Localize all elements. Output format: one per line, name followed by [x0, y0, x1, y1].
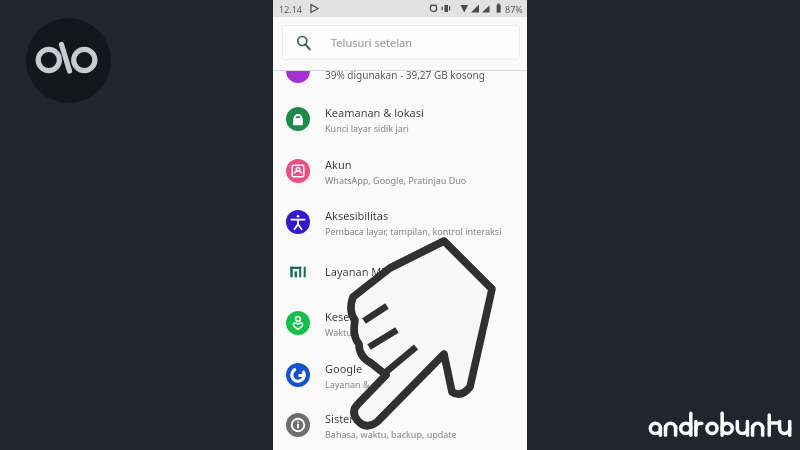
staticText: Bahasa, waktu, backup, update	[325, 428, 457, 440]
staticText: 87%	[505, 3, 523, 15]
button[interactable]: Kesehatan	[273, 297, 527, 349]
button[interactable]: Androbuntu logo	[26, 18, 111, 103]
button[interactable]: Layanan MIUI	[273, 246, 527, 298]
staticText: 12.14	[279, 3, 303, 15]
staticText: Layanan & preferensi	[325, 378, 415, 390]
other: androbuntu	[645, 410, 800, 442]
button[interactable]: Telusuri setelan	[282, 25, 520, 60]
staticText: Akun	[325, 157, 352, 172]
staticText: Kunci layar sidik jari	[325, 122, 409, 134]
button[interactable]: Akun	[273, 145, 527, 197]
staticText: Google	[325, 361, 363, 376]
button[interactable]: Aksesibilitas	[273, 196, 527, 248]
staticText: Waktu penggunaan, batas aplika...	[325, 326, 471, 338]
staticText: Telusuri setelan	[331, 35, 412, 50]
button[interactable]: 39% digunakan - 39,27 GB kosong	[273, 45, 527, 97]
button[interactable]: Keamanan & lokasi	[273, 93, 527, 145]
staticText: Sistem	[325, 411, 360, 426]
staticText: WhatsApp, Google, Pratinjau Duo	[325, 174, 467, 186]
staticText: Kesehatan	[325, 309, 380, 324]
button[interactable]: Google	[273, 349, 527, 401]
button[interactable]: Sistem	[273, 399, 527, 450]
staticText: Keamanan & lokasi	[325, 105, 424, 120]
staticText: Layanan MIUI	[325, 264, 397, 279]
staticText: Aksesibilitas	[325, 208, 389, 223]
staticText: Pembaca layar, tampilan, kontrol interak…	[325, 225, 502, 237]
staticText: 39% digunakan - 39,27 GB kosong	[325, 68, 485, 82]
